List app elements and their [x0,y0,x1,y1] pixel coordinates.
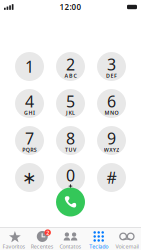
button[interactable]: 0 [56,163,85,192]
staticText: 6 [107,91,116,112]
staticText: 4 [25,91,34,112]
staticText: 8 [66,128,75,149]
button[interactable]: 6 [97,89,126,118]
button[interactable]: 8 [56,126,85,155]
staticText: Voicemail [115,243,138,250]
staticText: 12:00 [59,2,81,12]
button[interactable]: 2 [56,52,85,81]
staticText: 3 [107,54,116,75]
button[interactable]: Contatos [56,228,85,250]
button[interactable]: # [97,163,126,192]
button[interactable]: 2 [28,228,56,250]
button[interactable]: Teclado [85,228,113,250]
staticText: PQRS [22,146,37,153]
staticText: Contatos [59,243,81,250]
staticText: ∗ [22,168,37,188]
staticText: 2 [66,54,75,75]
staticText: Recentes [31,243,54,250]
staticText: 2 [46,229,49,236]
button[interactable]: 3 [97,52,126,81]
staticText: Favoritos [3,243,26,250]
staticText: JKL [66,109,75,116]
staticText: WXYZ [104,146,119,153]
staticText: 7 [25,128,34,149]
button[interactable]: 5 [56,89,85,118]
staticText: # [106,167,116,188]
staticText: GHI [24,109,35,116]
button[interactable]: 9 [97,126,126,155]
staticText: 0 [66,165,75,186]
staticText: DEF [106,72,117,79]
button[interactable]: 1 [15,52,44,81]
staticText: 1 [25,56,34,77]
button[interactable]: ∗ [15,163,44,192]
button[interactable]: 4 [15,89,44,118]
staticText: Teclado [89,243,108,250]
button[interactable]: Call [56,187,85,216]
button[interactable]: Favoritos [0,228,28,250]
staticText: 9 [107,128,116,149]
button[interactable]: 7 [15,126,44,155]
staticText: MNO [104,109,119,116]
button[interactable]: Voicemail [113,228,141,250]
staticText: 5 [66,91,75,112]
staticText: ABC [64,72,77,79]
staticText: TUV [65,146,76,153]
